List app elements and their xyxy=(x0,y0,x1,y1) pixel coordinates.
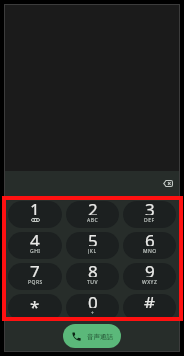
staticText: 1 xyxy=(30,201,40,215)
button[interactable]: 5 xyxy=(66,232,119,259)
button[interactable]: * xyxy=(8,294,62,321)
staticText: 7 xyxy=(30,263,40,277)
staticText: 5 xyxy=(88,232,98,246)
button[interactable]: 4 xyxy=(8,232,62,259)
staticText: WXYZ xyxy=(142,279,158,285)
staticText: PQRS xyxy=(28,279,43,285)
staticText: 8 xyxy=(88,263,98,277)
staticText: DEF xyxy=(144,217,155,223)
staticText: 2 xyxy=(88,201,98,215)
button[interactable]: 2 xyxy=(66,201,119,228)
button[interactable]: 3 xyxy=(123,201,176,228)
staticText: TUV xyxy=(87,279,98,285)
staticText: 音声通話 xyxy=(87,333,113,341)
staticText: 9 xyxy=(145,263,155,277)
staticText: * xyxy=(30,295,40,312)
staticText: + xyxy=(91,310,95,316)
staticText: 6 xyxy=(145,232,155,246)
button[interactable]: 8 xyxy=(66,263,119,290)
staticText: 0 xyxy=(88,294,98,308)
button[interactable]: Backspace xyxy=(158,173,178,193)
button[interactable]: 音声通話 xyxy=(63,324,121,348)
staticText: GHI xyxy=(30,248,41,254)
staticText: MNO xyxy=(143,248,157,254)
staticText: 4 xyxy=(30,232,40,246)
button[interactable]: 9 xyxy=(123,263,176,290)
button[interactable]: 1 xyxy=(8,201,62,228)
staticText: JKL xyxy=(88,248,97,254)
button[interactable]: 6 xyxy=(123,232,176,259)
button[interactable]: 0 xyxy=(66,294,119,321)
staticText: ABC xyxy=(87,217,99,223)
staticText: # xyxy=(144,294,155,308)
button[interactable]: 7 xyxy=(8,263,62,290)
staticText: 3 xyxy=(145,201,155,215)
button[interactable]: # xyxy=(123,294,176,321)
